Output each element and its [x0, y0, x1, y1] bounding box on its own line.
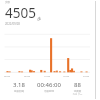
staticText: 移動距離	[14, 90, 24, 93]
staticText: 00:00	[4, 74, 11, 77]
button[interactable]: Step count chart	[0, 28, 100, 73]
staticText: 06:00	[24, 74, 31, 77]
staticText: 2022/09/28	[5, 22, 20, 26]
staticText: 歩	[37, 16, 41, 21]
staticText: 活動時間	[44, 90, 54, 93]
staticText: 消費量 カロリー	[72, 90, 83, 96]
staticText: 24:00	[83, 74, 90, 77]
staticText: 3.18	[13, 81, 25, 89]
staticText: 00:46:00	[37, 81, 61, 89]
staticText: 18:00	[63, 74, 70, 77]
staticText: 12:00	[44, 74, 51, 77]
staticText: 歩数	[5, 0, 11, 3]
button[interactable]: 4505	[5, 4, 100, 22]
button[interactable]: 3.18	[4, 81, 34, 93]
staticText: 88	[74, 81, 81, 89]
button[interactable]: 00:46:00	[34, 81, 63, 93]
button[interactable]: 88	[63, 81, 92, 96]
staticText: 4505	[5, 4, 36, 22]
